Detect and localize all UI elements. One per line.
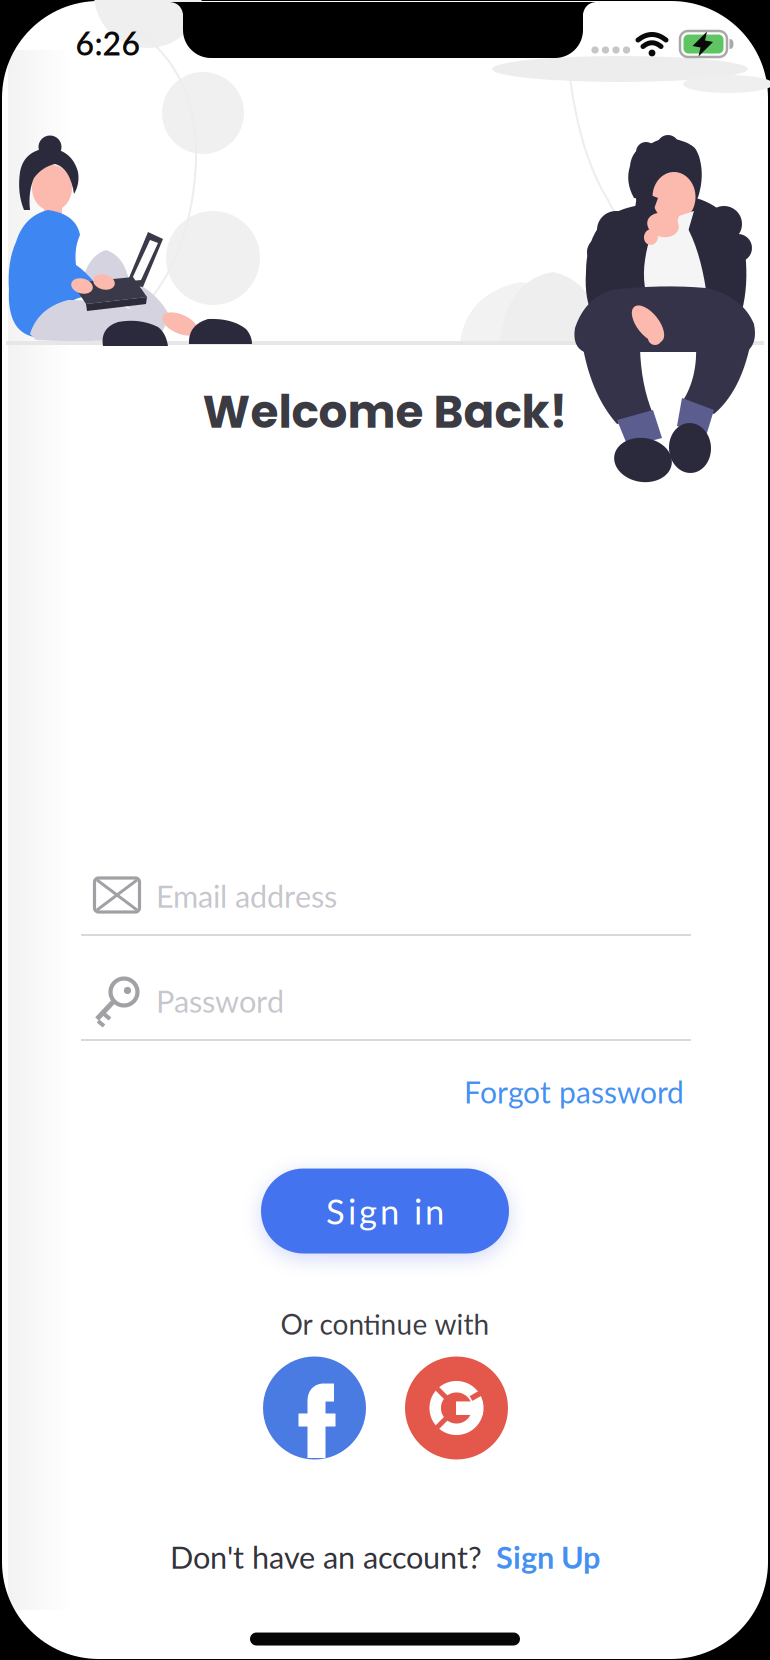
staticText: Sign Up (496, 1539, 600, 1575)
button[interactable]: Sign in (261, 1168, 509, 1253)
staticText: Sign in (326, 1190, 444, 1232)
staticText: 6:26 (75, 24, 140, 62)
staticText: Or continue with (280, 1307, 489, 1341)
button[interactable]: Continue with Google (405, 1356, 508, 1459)
button[interactable]: Forgot password (464, 1074, 684, 1110)
staticText: Password (156, 983, 284, 1019)
staticText: Forgot password (464, 1074, 684, 1110)
button[interactable]: Continue with Facebook (263, 1356, 366, 1459)
staticText: Welcome Back! (202, 380, 567, 444)
staticText: Email address (156, 878, 337, 914)
button[interactable]: Sign Up (496, 1539, 600, 1575)
staticText: Don't have an account? (170, 1539, 482, 1575)
